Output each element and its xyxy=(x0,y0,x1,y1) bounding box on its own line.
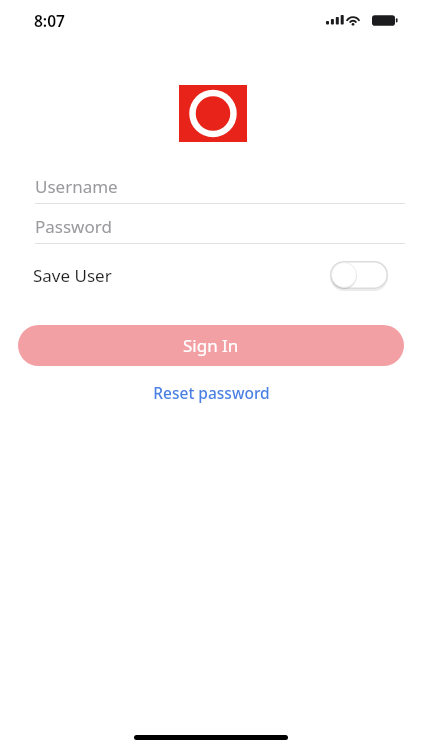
staticText: Password xyxy=(35,215,112,238)
button[interactable]: Reset password xyxy=(111,379,311,405)
button[interactable]: Save User xyxy=(33,258,388,292)
staticText: 8:07 xyxy=(34,10,65,31)
staticText: Reset password xyxy=(153,382,270,403)
button[interactable]: Sign In xyxy=(18,325,404,366)
staticText: Save User xyxy=(33,264,112,287)
button[interactable]: Save User toggle, off xyxy=(330,261,388,289)
button[interactable]: Password xyxy=(35,208,405,244)
staticText: Sign In xyxy=(183,334,239,357)
staticText: Username xyxy=(35,175,118,198)
button[interactable]: Username xyxy=(35,168,405,204)
